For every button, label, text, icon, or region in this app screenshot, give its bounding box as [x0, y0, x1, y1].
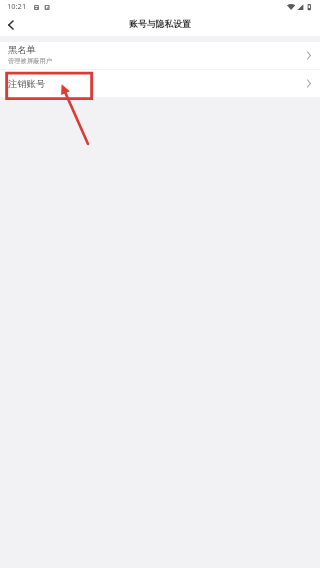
button[interactable]: 注销账号: [0, 70, 320, 97]
staticText: 10:21: [7, 1, 27, 11]
staticText: 管理被屏蔽用户: [8, 57, 53, 65]
staticText: 黑名单: [8, 44, 36, 56]
staticText: 注销账号: [8, 78, 46, 90]
button[interactable]: Back: [0, 16, 21, 36]
staticText: 账号与隐私设置: [129, 19, 191, 30]
button[interactable]: 黑名单: [0, 42, 320, 69]
